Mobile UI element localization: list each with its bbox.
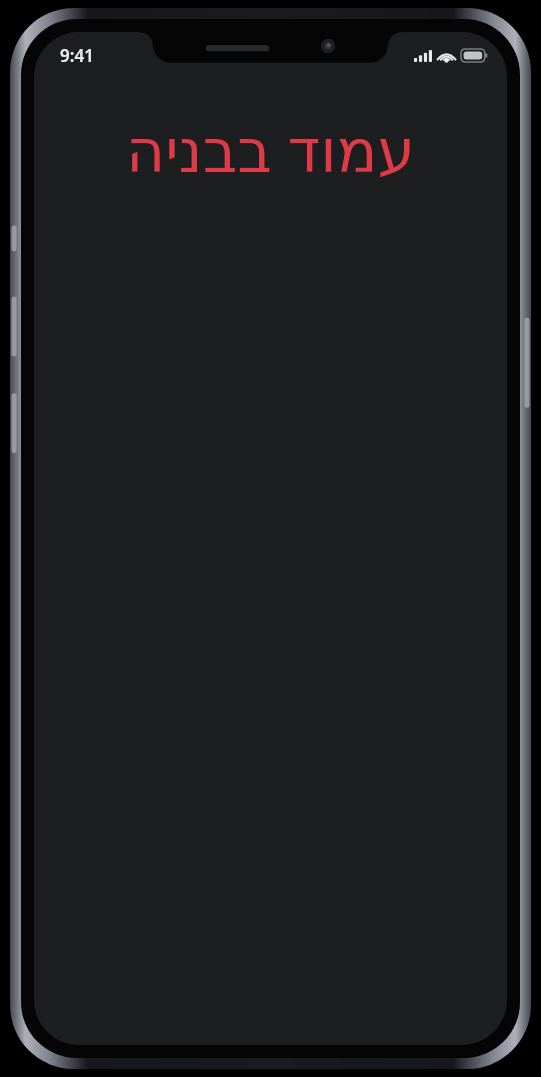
staticText: 9:41	[60, 44, 94, 67]
staticText: עמוד בבניה	[34, 108, 507, 190]
